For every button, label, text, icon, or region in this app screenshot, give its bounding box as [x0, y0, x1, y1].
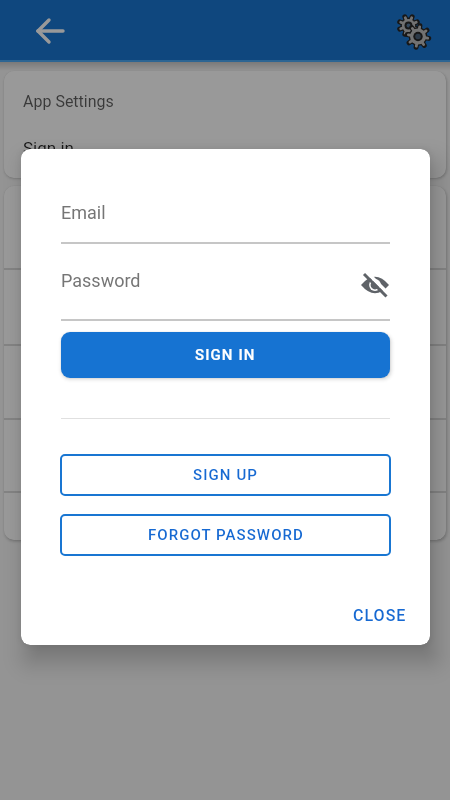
staticText: CLOSE: [353, 606, 407, 625]
button[interactable]: SIGN UP: [60, 454, 391, 496]
staticText: App Settings: [23, 92, 114, 111]
staticText: Password: [61, 270, 141, 291]
button[interactable]: SIGN IN: [61, 332, 390, 378]
staticText: FORGOT PASSWORD: [148, 526, 304, 544]
button[interactable]: [390, 6, 438, 54]
button[interactable]: FORGOT PASSWORD: [60, 514, 391, 556]
button[interactable]: CLOSE: [317, 599, 407, 631]
button[interactable]: [361, 271, 389, 299]
staticText: SIGN IN: [195, 346, 256, 364]
staticText: SIGN UP: [193, 466, 258, 484]
staticText: Sign in: [23, 138, 74, 158]
staticText: Email: [61, 202, 106, 223]
button[interactable]: [28, 9, 72, 53]
